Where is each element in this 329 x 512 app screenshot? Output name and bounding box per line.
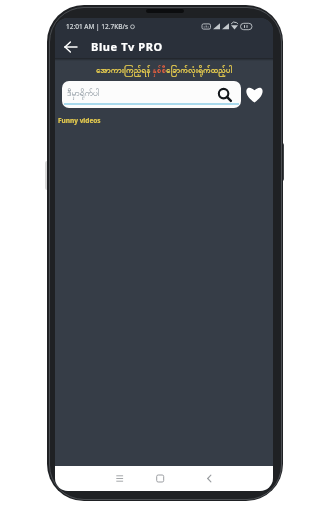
button[interactable]: [245, 85, 264, 104]
button[interactable]: [65, 41, 77, 53]
staticText: Funny videos: [58, 116, 101, 125]
staticText: ဒီမှာရိုက်ပါ: [67, 88, 100, 101]
staticText: Blue Tv PRO: [91, 39, 163, 54]
button[interactable]: ဒီမှာရိုက်ပါ: [62, 81, 241, 108]
button[interactable]: [115, 473, 213, 484]
staticText: အောကားကြည့်ရန် နှစ်စီခြောက်လုံးရိုက်ထည့်…: [96, 64, 233, 76]
staticText: 12:01 AM | 12.7KB/s: [66, 22, 128, 31]
